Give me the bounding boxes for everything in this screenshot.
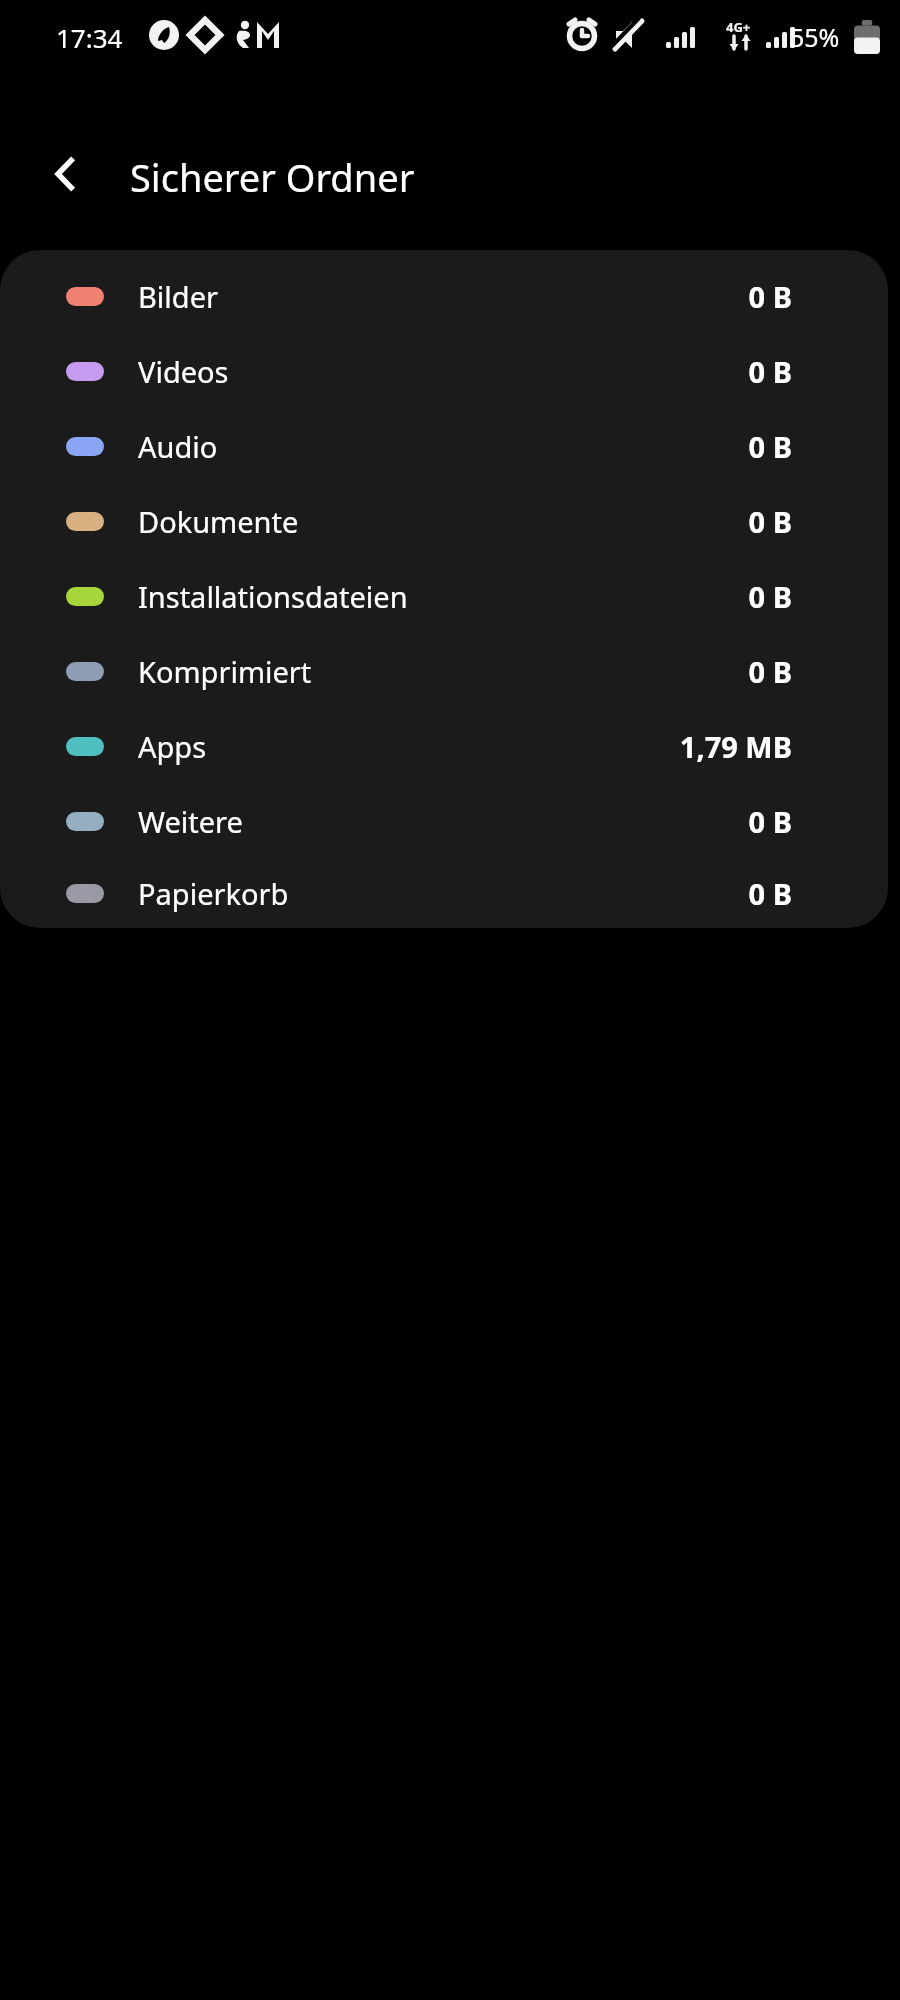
staticText: 0 B bbox=[748, 277, 792, 316]
staticText: Sicherer Ordner bbox=[130, 151, 415, 203]
staticText: 0 B bbox=[748, 427, 792, 466]
staticText: Weitere bbox=[138, 802, 748, 841]
button[interactable]: Zurück bbox=[30, 138, 102, 210]
staticText: Audio bbox=[138, 427, 748, 466]
staticText: 0 B bbox=[748, 352, 792, 391]
button[interactable]: Papierkorb bbox=[0, 859, 888, 928]
button[interactable]: Installationsdateien bbox=[0, 559, 888, 634]
staticText: 0 B bbox=[748, 874, 792, 913]
staticText: 0 B bbox=[748, 802, 792, 841]
staticText: 4G+ bbox=[726, 18, 751, 36]
staticText: Installationsdateien bbox=[138, 577, 748, 616]
staticText: 0 B bbox=[748, 652, 792, 691]
button[interactable]: Bilder bbox=[0, 259, 888, 334]
button[interactable]: Weitere bbox=[0, 784, 888, 859]
button[interactable]: Videos bbox=[0, 334, 888, 409]
button[interactable]: Komprimiert bbox=[0, 634, 888, 709]
button[interactable]: Dokumente bbox=[0, 484, 888, 559]
staticText: 0 B bbox=[748, 577, 792, 616]
staticText: 1,79 MB bbox=[679, 727, 792, 766]
staticText: 55% bbox=[790, 20, 840, 54]
staticText: Bilder bbox=[138, 277, 748, 316]
button[interactable]: Audio bbox=[0, 409, 888, 484]
staticText: Dokumente bbox=[138, 502, 748, 541]
staticText: Apps bbox=[138, 727, 679, 766]
staticText: Papierkorb bbox=[138, 874, 748, 913]
staticText: Videos bbox=[138, 352, 748, 391]
staticText: 0 B bbox=[748, 502, 792, 541]
button[interactable]: Apps bbox=[0, 709, 888, 784]
staticText: Komprimiert bbox=[138, 652, 748, 691]
staticText: 17:34 bbox=[56, 20, 123, 55]
